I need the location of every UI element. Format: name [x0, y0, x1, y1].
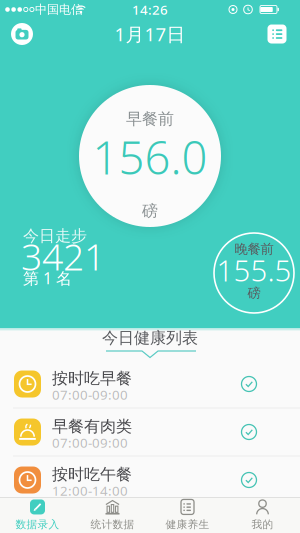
staticText: 07:00-09:00 [52, 386, 128, 403]
staticText: 磅 [142, 201, 158, 221]
staticText: 健康养生 [165, 518, 209, 531]
button[interactable]: 按时吃午餐 [0, 456, 300, 504]
staticText: 第 1 名 [23, 267, 72, 289]
staticText: 数据录入 [15, 518, 59, 531]
staticText: 1月17日 [114, 22, 185, 46]
staticText: 156.0 [92, 127, 207, 187]
staticText: 07:00-09:00 [52, 434, 128, 451]
button[interactable]: 数据录入 [0, 497, 75, 533]
button[interactable]: 健康养生 [150, 497, 225, 533]
button[interactable]: 我的 [225, 497, 300, 533]
button[interactable]: 早餐有肉类 [0, 408, 300, 456]
button[interactable]: 列表 [267, 24, 286, 43]
staticText: 14:26 [132, 1, 168, 18]
staticText: 中国电信 [35, 2, 83, 17]
button[interactable]: 按时吃早餐 [0, 360, 300, 408]
button[interactable]: 统计数据 [75, 497, 150, 533]
staticText: 我的 [251, 518, 273, 531]
button[interactable]: 拍照 [11, 23, 33, 45]
staticText: 155.5 [216, 250, 291, 289]
staticText: 早餐有肉类 [52, 417, 132, 436]
staticText: 晚餐前 [234, 241, 273, 257]
staticText: 统计数据 [90, 518, 134, 531]
staticText: 12:00-14:00 [52, 482, 128, 499]
staticText: 按时吃早餐 [52, 369, 132, 388]
staticText: 早餐前 [126, 109, 174, 129]
staticText: 今日健康列表 [102, 328, 198, 348]
staticText: 今日走步 [23, 226, 87, 246]
staticText: 3421 [21, 231, 105, 281]
staticText: 按时吃午餐 [52, 465, 132, 484]
staticText: 磅 [247, 285, 260, 301]
